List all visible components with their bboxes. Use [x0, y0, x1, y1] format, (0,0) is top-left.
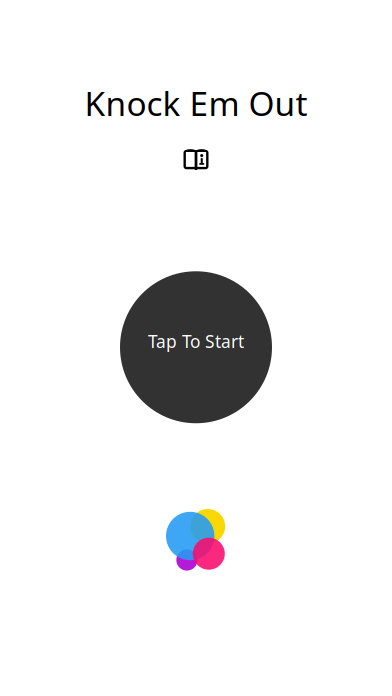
- button[interactable]: Instructions: [183, 148, 208, 169]
- staticText: Tap To Start: [148, 330, 244, 353]
- staticText: Knock Em Out: [84, 81, 307, 125]
- button[interactable]: Tap To Start: [120, 271, 272, 423]
